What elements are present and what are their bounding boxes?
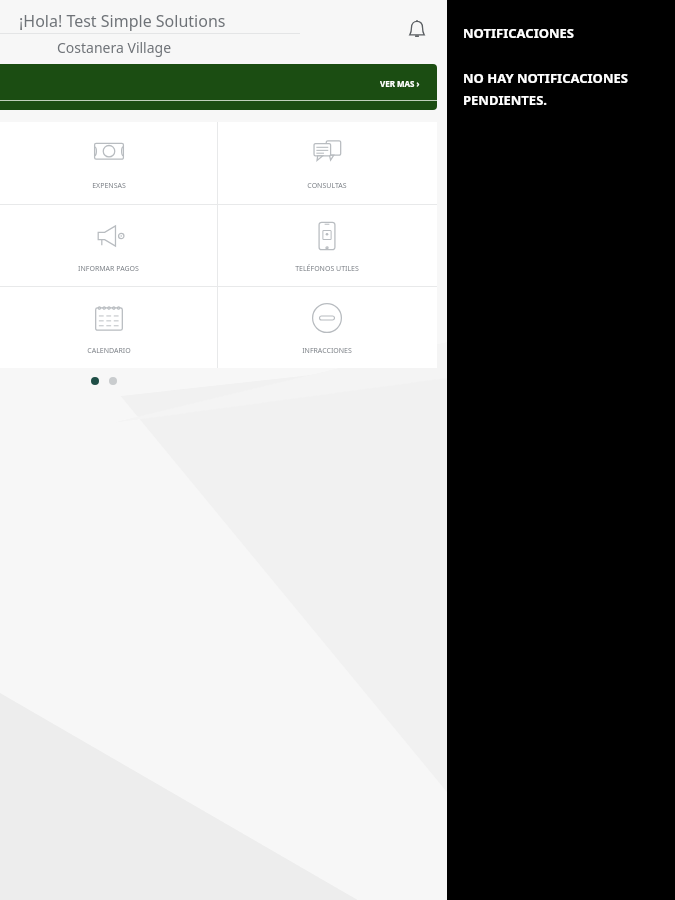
button[interactable]: VER MAS › (0, 64, 437, 110)
staticText: TELÉFONOS UTILES (295, 264, 359, 274)
staticText: ¡Hola! Test Simple Solutions (19, 10, 226, 32)
button[interactable]: CALENDARIO (0, 287, 217, 368)
button[interactable]: INFORMAR PAGOS (0, 205, 217, 286)
staticText: NO HAY NOTIFICACIONES PENDIENTES. (463, 69, 663, 109)
button[interactable]: TELÉFONOS UTILES (217, 205, 437, 286)
button[interactable]: Notificaciones (395, 8, 439, 52)
staticText: VER MAS › (380, 78, 420, 89)
button[interactable]: EXPENSAS (0, 122, 217, 204)
staticText: EXPENSAS (92, 181, 126, 191)
staticText: CONSULTAS (307, 181, 347, 191)
staticText: Costanera Village (57, 38, 172, 57)
staticText: INFRACCIONES (302, 346, 352, 356)
button[interactable]: INFRACCIONES (217, 287, 437, 368)
staticText: INFORMAR PAGOS (78, 264, 139, 274)
staticText: NOTIFICACIONES (463, 24, 574, 42)
button[interactable]: CONSULTAS (217, 122, 437, 204)
staticText: CALENDARIO (87, 346, 131, 356)
